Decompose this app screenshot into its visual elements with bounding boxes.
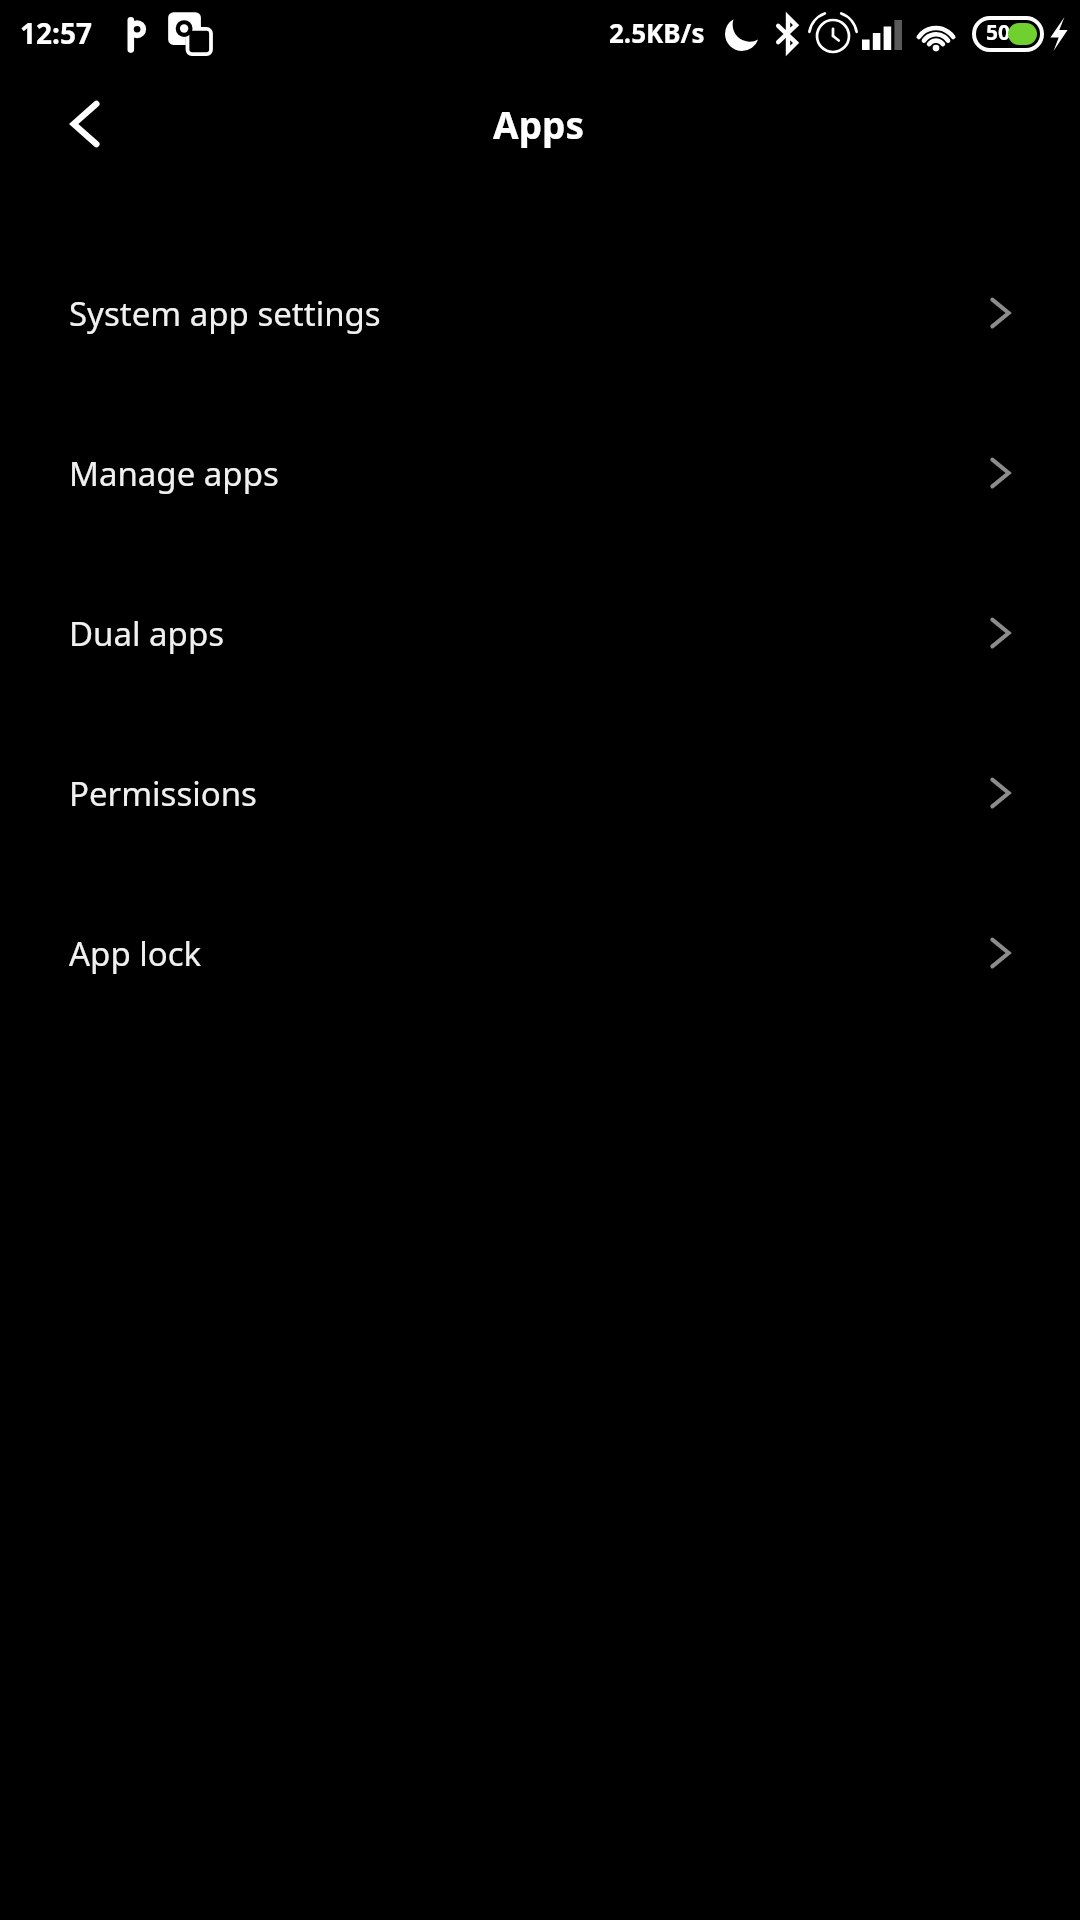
button[interactable]: Back [46, 82, 130, 166]
button[interactable]: App lock [0, 873, 1080, 1033]
staticText: App lock [69, 931, 202, 976]
button[interactable]: Dual apps [0, 553, 1080, 713]
button[interactable]: System app settings [0, 233, 1080, 393]
staticText: 50 [986, 18, 1011, 47]
staticText: 12:57 [20, 14, 92, 52]
button[interactable]: Permissions [0, 713, 1080, 873]
staticText: Permissions [69, 771, 257, 816]
staticText: System app settings [69, 291, 381, 336]
staticText: Dual apps [69, 611, 225, 656]
staticText: Apps [493, 99, 584, 149]
staticText: 2.5KB/s [609, 15, 705, 50]
button[interactable]: Manage apps [0, 393, 1080, 553]
staticText: Manage apps [69, 451, 279, 496]
